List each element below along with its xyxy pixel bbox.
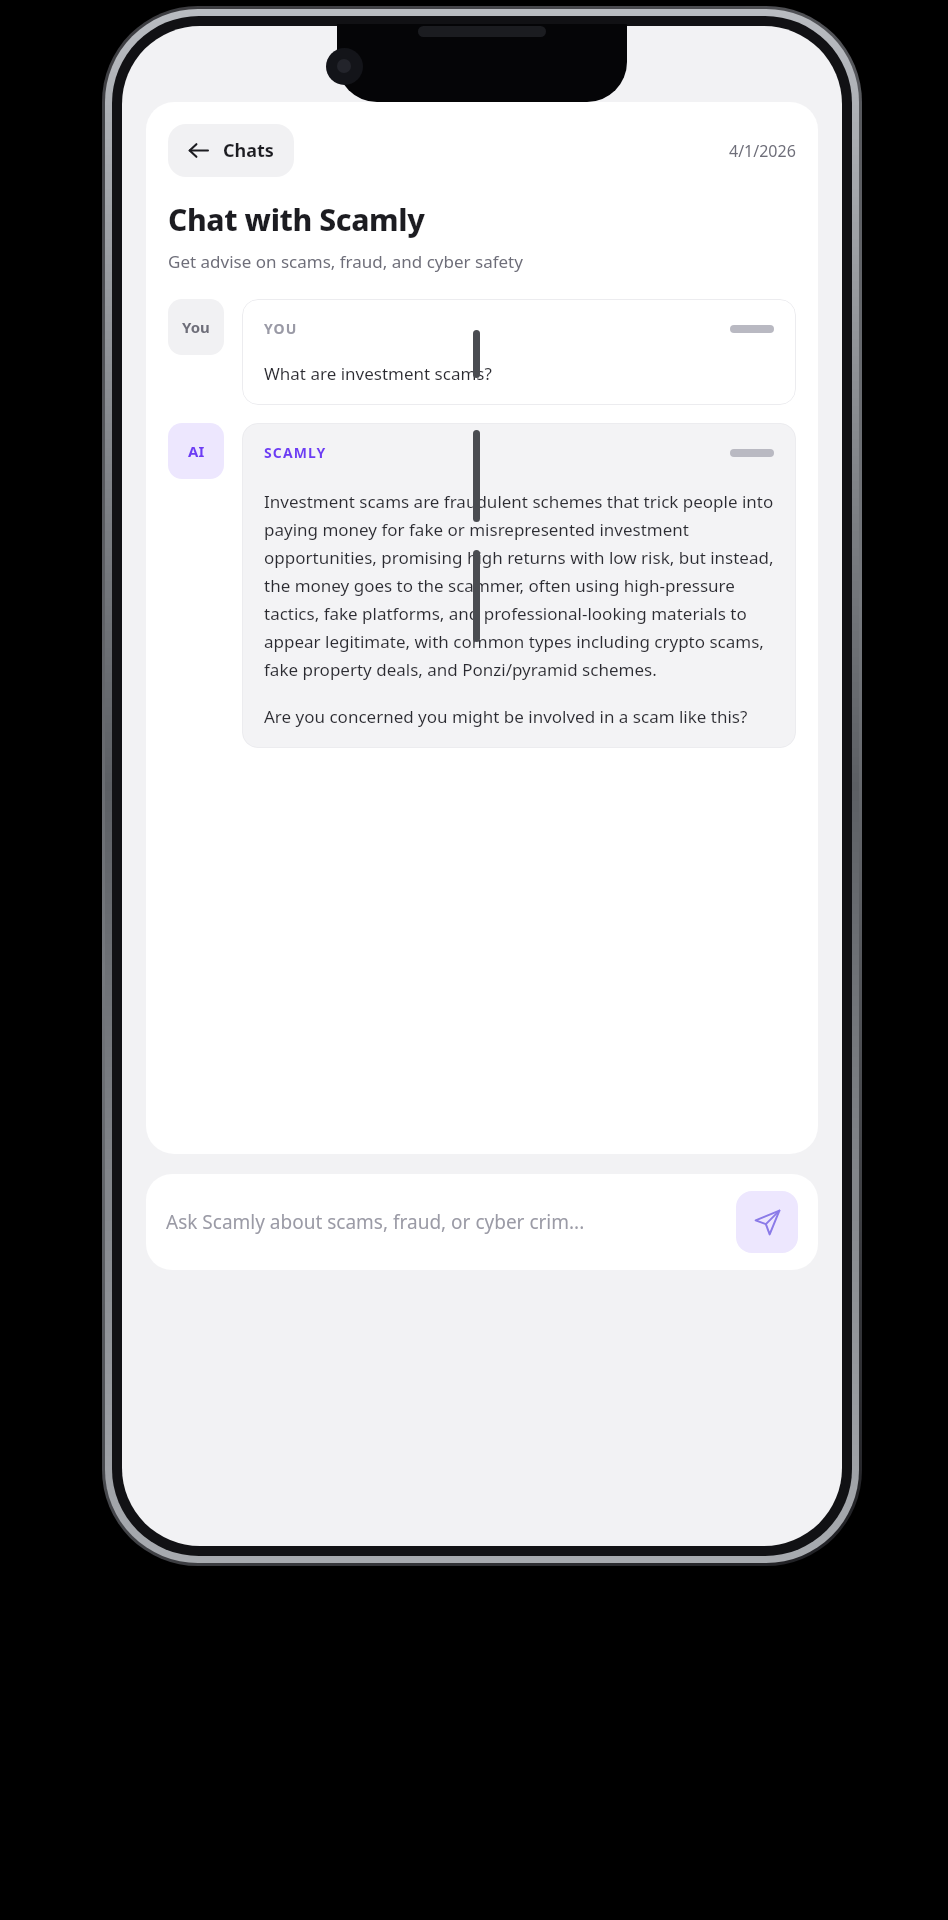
staticText: YOU (264, 319, 298, 338)
button[interactable]: Ask Scamly about scams, fraud, or cyber … (166, 1174, 726, 1270)
staticText: You (182, 317, 210, 337)
staticText: Are you concerned you might be involved … (264, 705, 748, 728)
staticText: Get advise on scams, fraud, and cyber sa… (168, 250, 523, 273)
staticText: Ask Scamly about scams, fraud, or cyber … (166, 1209, 585, 1235)
staticText: What are investment scams? (264, 362, 492, 385)
staticText: Chat with Scamly (168, 199, 425, 240)
staticText: AI (188, 441, 205, 461)
staticText: SCAMLY (264, 443, 327, 462)
other: Back (188, 140, 209, 161)
staticText: Chats (223, 138, 274, 163)
staticText: Investment scams are fraudulent schemes … (264, 490, 774, 681)
button[interactable]: You (168, 299, 224, 355)
button[interactable]: AI (168, 423, 224, 479)
button[interactable]: YOU (242, 299, 796, 405)
button[interactable]: Send (736, 1191, 798, 1253)
staticText: 4/1/2026 (729, 140, 796, 162)
button[interactable]: SCAMLY (242, 423, 796, 748)
button[interactable]: Back (168, 124, 294, 177)
